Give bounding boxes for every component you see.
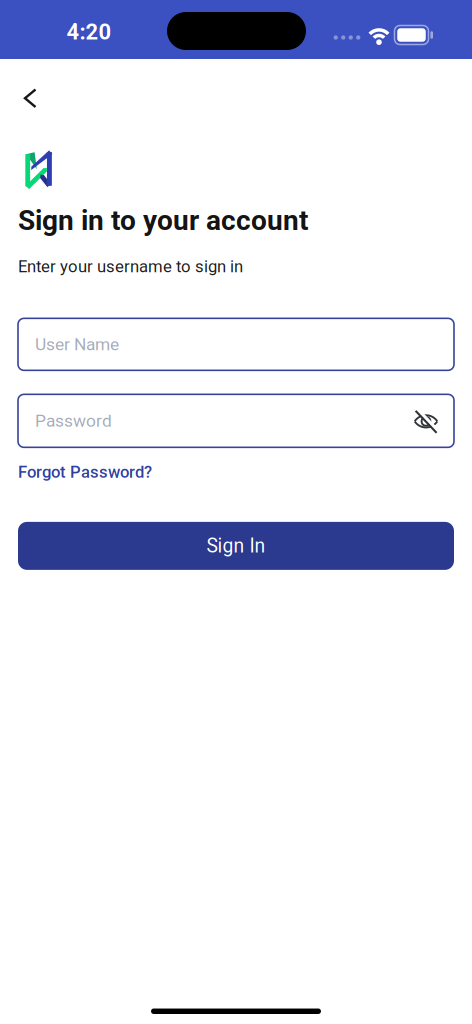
button[interactable]: Back	[22, 88, 40, 109]
staticText: 4:20	[66, 19, 111, 45]
staticText: Forgot Password?	[18, 462, 152, 482]
button[interactable]: User Name	[18, 318, 454, 370]
button[interactable]: Forgot Password?	[18, 462, 152, 482]
staticText: Sign in to your account	[18, 204, 308, 237]
staticText: User Name	[35, 334, 119, 354]
staticText: Sign In	[206, 534, 265, 557]
button[interactable]: Sign In	[18, 522, 454, 570]
staticText: Enter your username to sign in	[18, 257, 243, 276]
button[interactable]: Show password	[413, 408, 439, 434]
button[interactable]: Password	[18, 394, 454, 447]
staticText: Password	[35, 411, 112, 431]
